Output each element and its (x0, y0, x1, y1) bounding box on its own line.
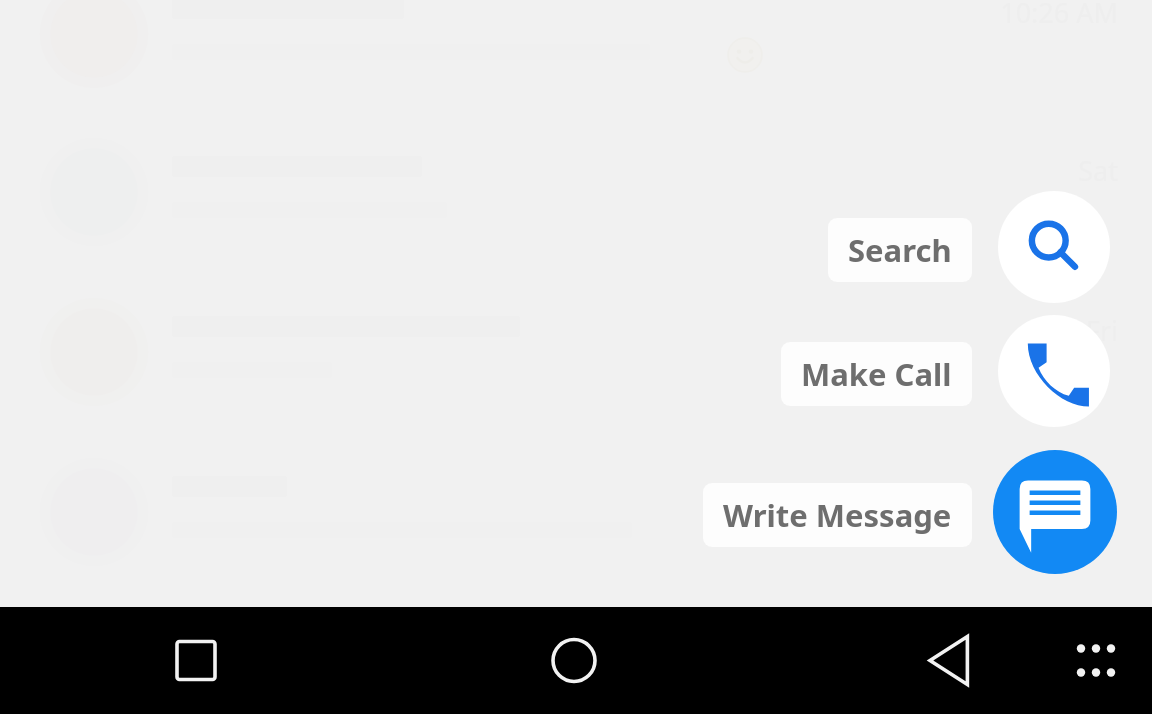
staticText: Write Message (723, 494, 952, 536)
button[interactable]: Write Message (703, 483, 972, 547)
button[interactable]: Recent apps (152, 607, 240, 714)
staticText: Make Call (801, 353, 952, 395)
button[interactable]: Home (530, 607, 618, 714)
button[interactable]: Search (998, 191, 1110, 303)
button[interactable]: Back (907, 607, 995, 714)
button[interactable]: Make Call (998, 315, 1110, 427)
button[interactable]: Write Message (993, 450, 1117, 574)
button[interactable]: Sat (0, 130, 1152, 250)
button[interactable]: Make Call (781, 342, 972, 406)
button[interactable]: Search (828, 218, 972, 282)
button[interactable]: More options (1056, 607, 1136, 714)
staticText: Search (848, 229, 952, 271)
staticText: Fri (1085, 312, 1118, 349)
button[interactable] (0, 450, 1152, 570)
button[interactable]: Fri (0, 290, 1152, 410)
